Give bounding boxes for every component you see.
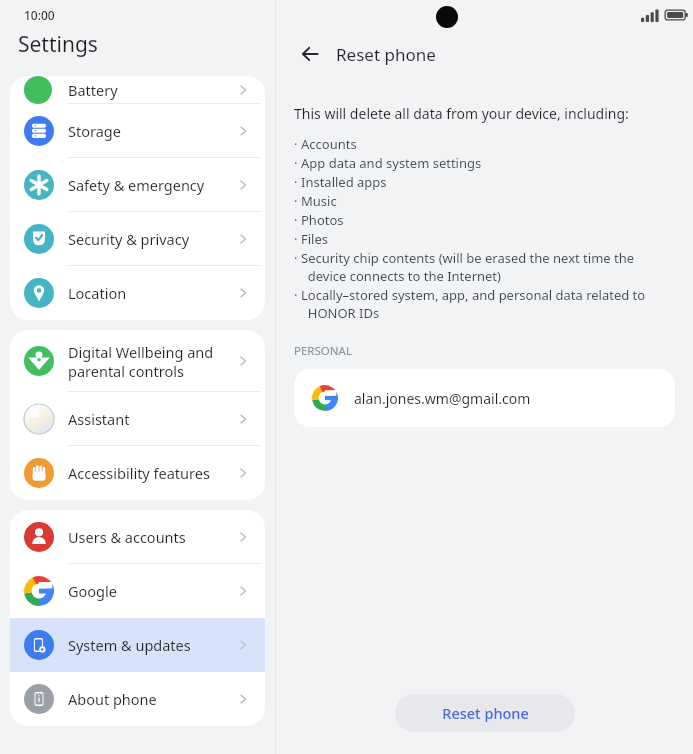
staticText: Security chip contents (will be erased t… <box>301 249 635 285</box>
staticText: · <box>294 286 298 304</box>
staticText: Storage <box>68 121 235 141</box>
staticText: Digital Wellbeing and parental controls <box>68 342 235 381</box>
button[interactable]: About phone <box>10 672 265 726</box>
button[interactable]: Security & privacy <box>10 212 265 266</box>
staticText: · <box>294 192 298 210</box>
staticText: About phone <box>68 689 235 709</box>
staticText: · <box>294 173 298 191</box>
staticText: · <box>294 211 298 229</box>
staticText: Accounts <box>301 135 357 153</box>
button[interactable]: Storage <box>10 104 265 158</box>
staticText: Assistant <box>68 409 235 429</box>
staticText: Google <box>68 581 235 601</box>
button[interactable]: Assistant <box>10 392 265 446</box>
staticText: Battery <box>68 80 235 100</box>
staticText: Security & privacy <box>68 229 235 249</box>
button[interactable]: Battery <box>10 76 265 104</box>
button[interactable]: Safety & emergency <box>10 158 265 212</box>
staticText: Safety & emergency <box>68 175 235 195</box>
staticText: · <box>294 135 298 153</box>
staticText: · <box>294 154 298 172</box>
button[interactable]: Users & accounts <box>10 510 265 564</box>
button[interactable]: Google <box>10 564 265 618</box>
staticText: Music <box>301 192 337 210</box>
staticText: Installed apps <box>301 173 387 191</box>
staticText: Users & accounts <box>68 527 235 547</box>
staticText: This will delete all data from your devi… <box>294 104 629 123</box>
button[interactable]: alan.jones.wm@gmail.com <box>294 369 675 427</box>
staticText: Settings <box>18 30 98 59</box>
button[interactable]: Location <box>10 266 265 320</box>
button[interactable]: Reset phone <box>395 694 575 732</box>
staticText: · <box>294 249 298 267</box>
staticText: alan.jones.wm@gmail.com <box>354 389 531 408</box>
staticText: 10:00 <box>24 7 55 23</box>
staticText: System & updates <box>68 635 235 655</box>
staticText: Accessibility features <box>68 463 235 483</box>
staticText: Locally–stored system, app, and personal… <box>301 286 646 322</box>
staticText: Reset phone <box>442 703 529 723</box>
staticText: · <box>294 230 298 248</box>
staticText: Reset phone <box>336 43 436 66</box>
staticText: Photos <box>301 211 344 229</box>
staticText: Location <box>68 283 235 303</box>
staticText: PERSONAL <box>294 343 352 359</box>
button[interactable]: Digital Wellbeing and parental controls <box>10 330 265 392</box>
staticText: Files <box>301 230 329 248</box>
button[interactable]: Accessibility features <box>10 446 265 500</box>
button[interactable]: System & updates <box>10 618 265 672</box>
button[interactable]: Back <box>294 37 328 71</box>
staticText: App data and system settings <box>301 154 482 172</box>
